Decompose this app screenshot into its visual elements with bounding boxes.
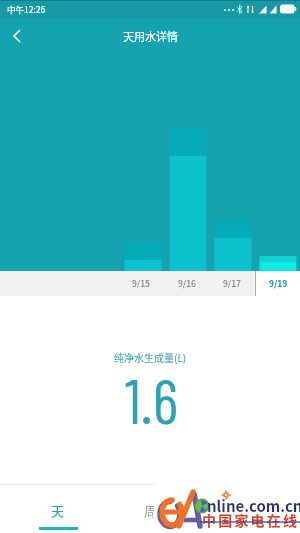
staticText: 中国家电在线	[202, 510, 300, 530]
staticText: nline.com.cn	[207, 495, 300, 517]
staticText: 9/16	[178, 277, 196, 289]
staticText: 中午12:26	[7, 3, 46, 15]
staticText: 9/17	[223, 277, 241, 289]
staticText: 天	[51, 501, 65, 520]
staticText: 纯净水生成量(L)	[114, 350, 187, 364]
button[interactable]	[256, 271, 300, 296]
button[interactable]: 月	[214, 487, 274, 533]
button[interactable]	[0, 22, 34, 50]
button[interactable]: 周	[121, 487, 181, 533]
staticText: 周	[144, 501, 158, 520]
staticText: 月	[237, 501, 251, 520]
staticText: 天用水详情	[123, 28, 178, 44]
staticText: 9/15	[132, 277, 150, 289]
button[interactable]: 天	[28, 487, 88, 533]
staticText: 1.6	[125, 362, 179, 436]
staticText: 9/19	[269, 277, 288, 289]
